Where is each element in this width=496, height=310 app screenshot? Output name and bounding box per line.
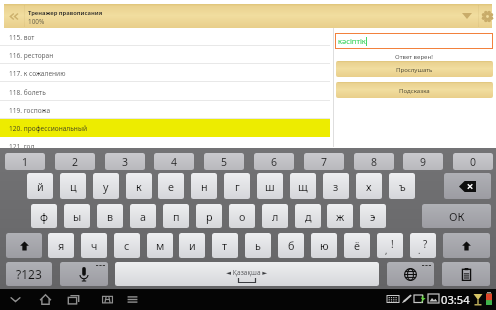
button[interactable]: б — [278, 233, 304, 258]
button[interactable]: 7 — [304, 153, 344, 170]
button[interactable]: 2 — [55, 153, 95, 170]
button[interactable]: 117. к сожалению — [0, 64, 330, 82]
button[interactable]: ? — [410, 233, 436, 258]
staticText: п — [173, 209, 180, 224]
button[interactable]: ! — [377, 233, 403, 258]
button[interactable]: Settings — [479, 4, 496, 28]
button[interactable]: к — [126, 173, 152, 199]
button[interactable]: я — [48, 233, 74, 258]
staticText: 4 — [171, 155, 178, 169]
button[interactable]: Hide keyboard — [2, 289, 28, 310]
button[interactable]: х — [356, 173, 382, 199]
button[interactable]: 1 — [5, 153, 45, 170]
button[interactable]: кәсіптік — [335, 33, 493, 49]
button[interactable]: т — [212, 233, 238, 258]
staticText: и — [189, 238, 196, 253]
button[interactable]: Recent apps — [60, 289, 86, 310]
button[interactable]: з — [323, 173, 349, 199]
button[interactable]: 120. профессиональный — [0, 119, 330, 137]
staticText: ю — [320, 238, 329, 253]
button[interactable]: э — [360, 204, 386, 228]
button[interactable]: ц — [60, 173, 86, 199]
button[interactable]: с — [114, 233, 140, 258]
staticText: л — [272, 209, 279, 224]
button[interactable]: Voice input — [60, 262, 108, 286]
staticText: ?123 — [16, 266, 42, 282]
button[interactable]: 6 — [254, 153, 294, 170]
button[interactable]: 115. вот — [0, 28, 330, 46]
button[interactable]: и — [179, 233, 205, 258]
button[interactable]: ё — [344, 233, 370, 258]
button[interactable]: 116. ресторан — [0, 46, 330, 64]
button[interactable]: Shift — [6, 233, 42, 258]
button[interactable]: 4 — [154, 153, 194, 170]
button[interactable]: Menu — [119, 289, 145, 310]
button[interactable]: о — [229, 204, 255, 228]
staticText: 0 — [470, 155, 477, 169]
staticText: т — [222, 238, 228, 253]
button[interactable]: Backspace — [444, 173, 491, 199]
button[interactable]: Прослушать — [336, 61, 493, 77]
button[interactable]: 3 — [105, 153, 145, 170]
button[interactable]: ?123 — [6, 262, 52, 286]
button[interactable]: й — [27, 173, 53, 199]
button[interactable]: Change language — [387, 262, 434, 286]
button[interactable]: ОК — [422, 204, 491, 228]
button[interactable]: щ — [290, 173, 316, 199]
staticText: 100% — [28, 17, 45, 26]
staticText: 8 — [371, 155, 378, 169]
staticText: 9 — [420, 155, 427, 169]
staticText: ъ — [399, 179, 406, 194]
staticText: с — [124, 238, 130, 253]
staticText: ф — [40, 209, 48, 224]
staticText: . — [418, 244, 421, 256]
staticText: ◄ Қазақша ► — [226, 268, 268, 277]
button[interactable]: Home — [32, 289, 58, 310]
button[interactable]: 118. болеть — [0, 83, 330, 101]
staticText: 1 — [22, 155, 29, 169]
staticText: ц — [70, 179, 77, 194]
button[interactable]: ш — [257, 173, 283, 199]
button[interactable]: Back — [4, 4, 24, 28]
button[interactable]: Shift — [443, 233, 490, 258]
button[interactable]: Switch keyboard — [94, 289, 120, 310]
button[interactable]: ю — [311, 233, 337, 258]
staticText: щ — [298, 179, 308, 194]
button[interactable]: л — [262, 204, 288, 228]
staticText: , — [385, 244, 388, 256]
button[interactable]: у — [93, 173, 119, 199]
button[interactable]: н — [191, 173, 217, 199]
button[interactable]: г — [224, 173, 250, 199]
button[interactable]: Clipboard — [442, 262, 490, 286]
button[interactable]: п — [163, 204, 189, 228]
staticText: 116. ресторан — [9, 51, 54, 60]
button[interactable]: ь — [245, 233, 271, 258]
staticText: Ответ верен! — [395, 52, 433, 60]
button[interactable]: 9 — [403, 153, 443, 170]
button[interactable]: е — [158, 173, 184, 199]
button[interactable]: а — [130, 204, 156, 228]
button[interactable]: ы — [64, 204, 90, 228]
button[interactable]: 119. госпожа — [0, 101, 330, 119]
button[interactable]: м — [147, 233, 173, 258]
staticText: 117. к сожалению — [9, 69, 66, 78]
staticText: ч — [91, 238, 98, 253]
button[interactable]: More options — [456, 4, 478, 28]
button[interactable]: р — [196, 204, 222, 228]
staticText: в — [107, 209, 114, 224]
staticText: г — [235, 179, 240, 194]
button[interactable]: 8 — [354, 153, 394, 170]
button[interactable]: 5 — [204, 153, 244, 170]
button[interactable]: Space — [115, 262, 379, 286]
staticText: е — [168, 179, 174, 194]
staticText: я — [58, 238, 65, 253]
button[interactable]: Подсказка — [336, 82, 493, 98]
button[interactable]: 0 — [453, 153, 493, 170]
button[interactable]: ч — [81, 233, 107, 258]
button[interactable]: в — [97, 204, 123, 228]
button[interactable]: д — [295, 204, 321, 228]
button[interactable]: ъ — [389, 173, 415, 199]
button[interactable]: 121. год — [0, 137, 330, 155]
button[interactable]: ф — [31, 204, 57, 228]
button[interactable]: ж — [327, 204, 353, 228]
